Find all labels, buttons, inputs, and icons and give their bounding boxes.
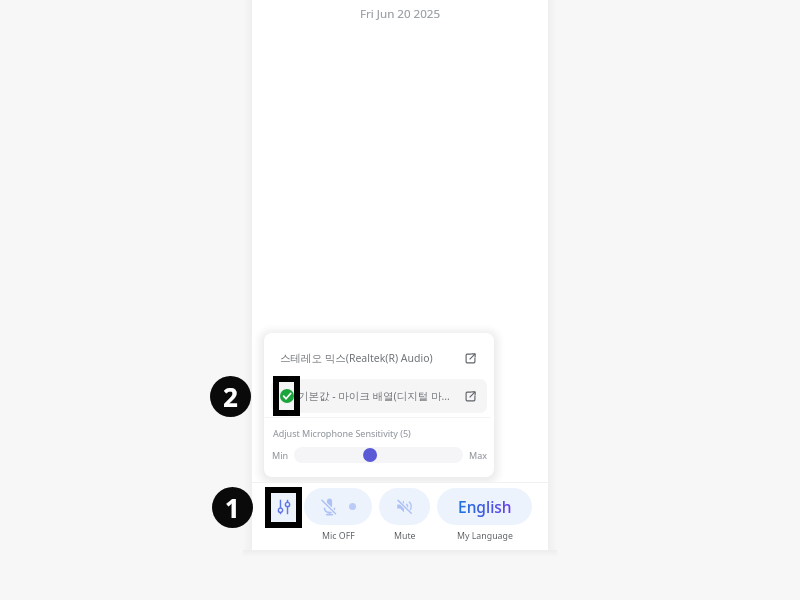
staticText: Max	[469, 449, 487, 461]
staticText: My Language	[457, 530, 513, 542]
staticText: Fri Jun 20 2025	[360, 6, 441, 22]
button[interactable]: Open device	[465, 353, 476, 364]
button[interactable]: Mute	[379, 488, 430, 525]
button[interactable]: 스테레오 믹스(Realtek(R) Audio)	[271, 341, 487, 375]
staticText: 1	[225, 490, 240, 525]
button[interactable]	[294, 447, 463, 463]
staticText: 스테레오 믹스(Realtek(R) Audio)	[280, 351, 433, 365]
staticText: Adjust Microphone Sensitivity (5)	[273, 427, 411, 439]
button[interactable]: Open device	[465, 391, 476, 402]
other: Mute	[396, 498, 413, 515]
staticText: Min	[272, 449, 289, 461]
button[interactable]: English	[437, 488, 532, 525]
staticText: Mic OFF	[322, 530, 355, 542]
staticText: Mute	[394, 530, 416, 542]
button[interactable]: 기본값 - 마이크 배열(디지털 마...	[271, 379, 487, 413]
button[interactable]: Microphone off	[304, 488, 372, 525]
other: Microphone off	[320, 497, 339, 516]
staticText: English	[458, 496, 512, 517]
staticText: 2	[223, 379, 238, 414]
button[interactable]: Audio settings	[265, 488, 302, 525]
staticText: 기본값 - 마이크 배열(디지털 마...	[298, 389, 450, 403]
